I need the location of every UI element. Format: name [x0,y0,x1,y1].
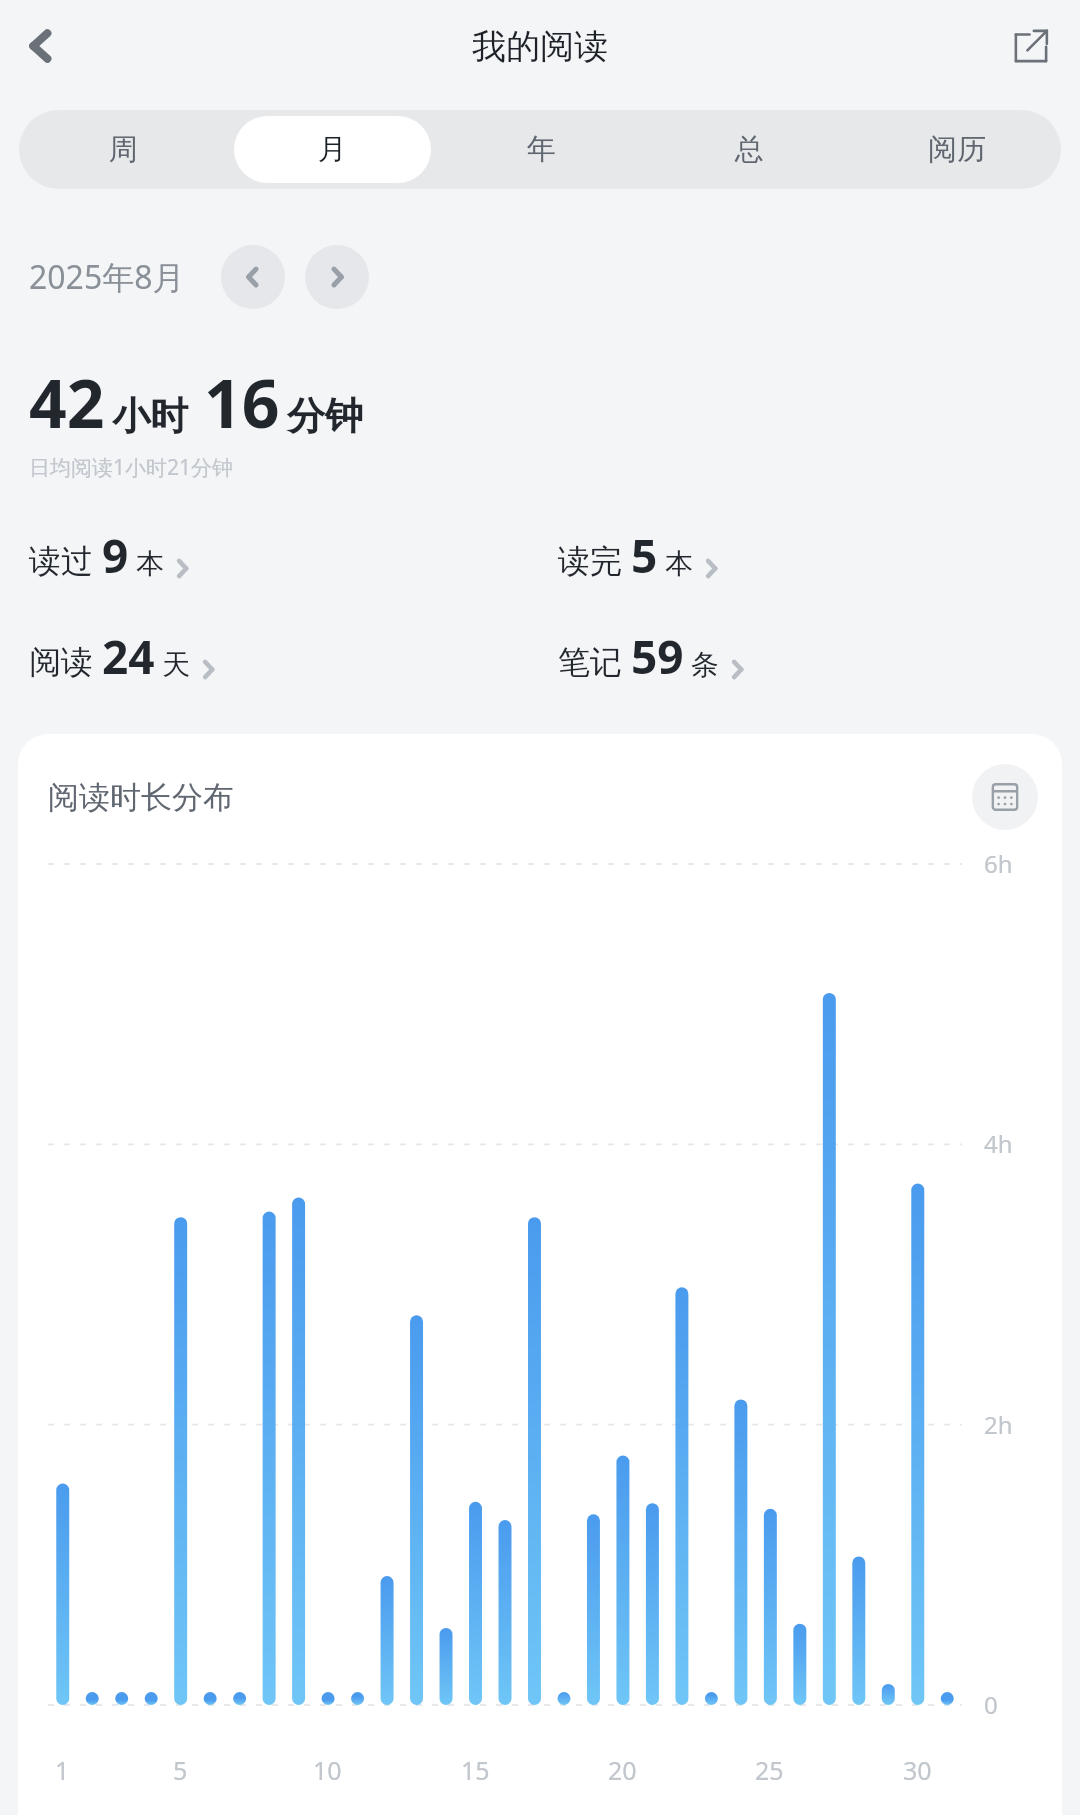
button[interactable]: 笔记 [558,621,747,692]
staticText: 15 [461,1753,490,1787]
staticText: 30 [903,1753,932,1787]
staticText: 阅读 [29,642,93,682]
button[interactable]: 总 [651,116,847,183]
staticText: 笔记 [558,642,622,682]
button[interactable]: Share [996,11,1066,81]
staticText: 25 [755,1753,784,1787]
staticText: 天 [162,647,190,682]
button[interactable]: Previous month [221,245,285,309]
staticText: 分钟 [287,392,363,440]
staticText: 16 [204,357,280,447]
button[interactable]: 读过 [29,520,192,591]
staticText: 总 [735,131,764,168]
staticText: 5 [173,1753,188,1787]
staticText: 日均阅读1小时21分钟 [29,453,234,482]
staticText: 6h [984,847,1013,880]
button[interactable]: 年 [443,116,639,183]
button[interactable]: 读完 [558,520,721,591]
staticText: 59 [631,625,684,688]
staticText: 读过 [29,541,93,581]
button[interactable]: 阅历 [859,116,1055,183]
staticText: 2025年8月 [29,255,185,299]
staticText: 24 [102,625,155,688]
staticText: 小时 [112,392,188,440]
button[interactable]: 周 [25,116,222,183]
staticText: 4h [984,1127,1013,1160]
staticText: 9 [102,524,129,587]
staticText: 年 [527,131,556,168]
staticText: 周 [109,131,138,168]
button[interactable]: 月 [234,116,431,183]
staticText: 42 [29,357,105,447]
staticText: 月 [318,131,347,168]
button[interactable]: Next month [305,245,369,309]
button[interactable]: Back [6,11,76,81]
staticText: 1 [55,1753,70,1787]
staticText: 条 [691,647,719,682]
staticText: 2h [984,1408,1013,1441]
staticText: 阅读时长分布 [48,778,234,817]
staticText: 20 [608,1753,637,1787]
staticText: 我的阅读 [472,25,608,68]
staticText: 读完 [558,541,622,581]
staticText: 5 [631,524,658,587]
staticText: 本 [136,546,164,581]
staticText: 10 [313,1753,342,1787]
button[interactable]: 阅读 [29,621,218,692]
button[interactable]: Calendar [972,764,1038,830]
staticText: 本 [665,546,693,581]
staticText: 阅历 [928,131,986,168]
staticText: 0 [984,1688,998,1721]
